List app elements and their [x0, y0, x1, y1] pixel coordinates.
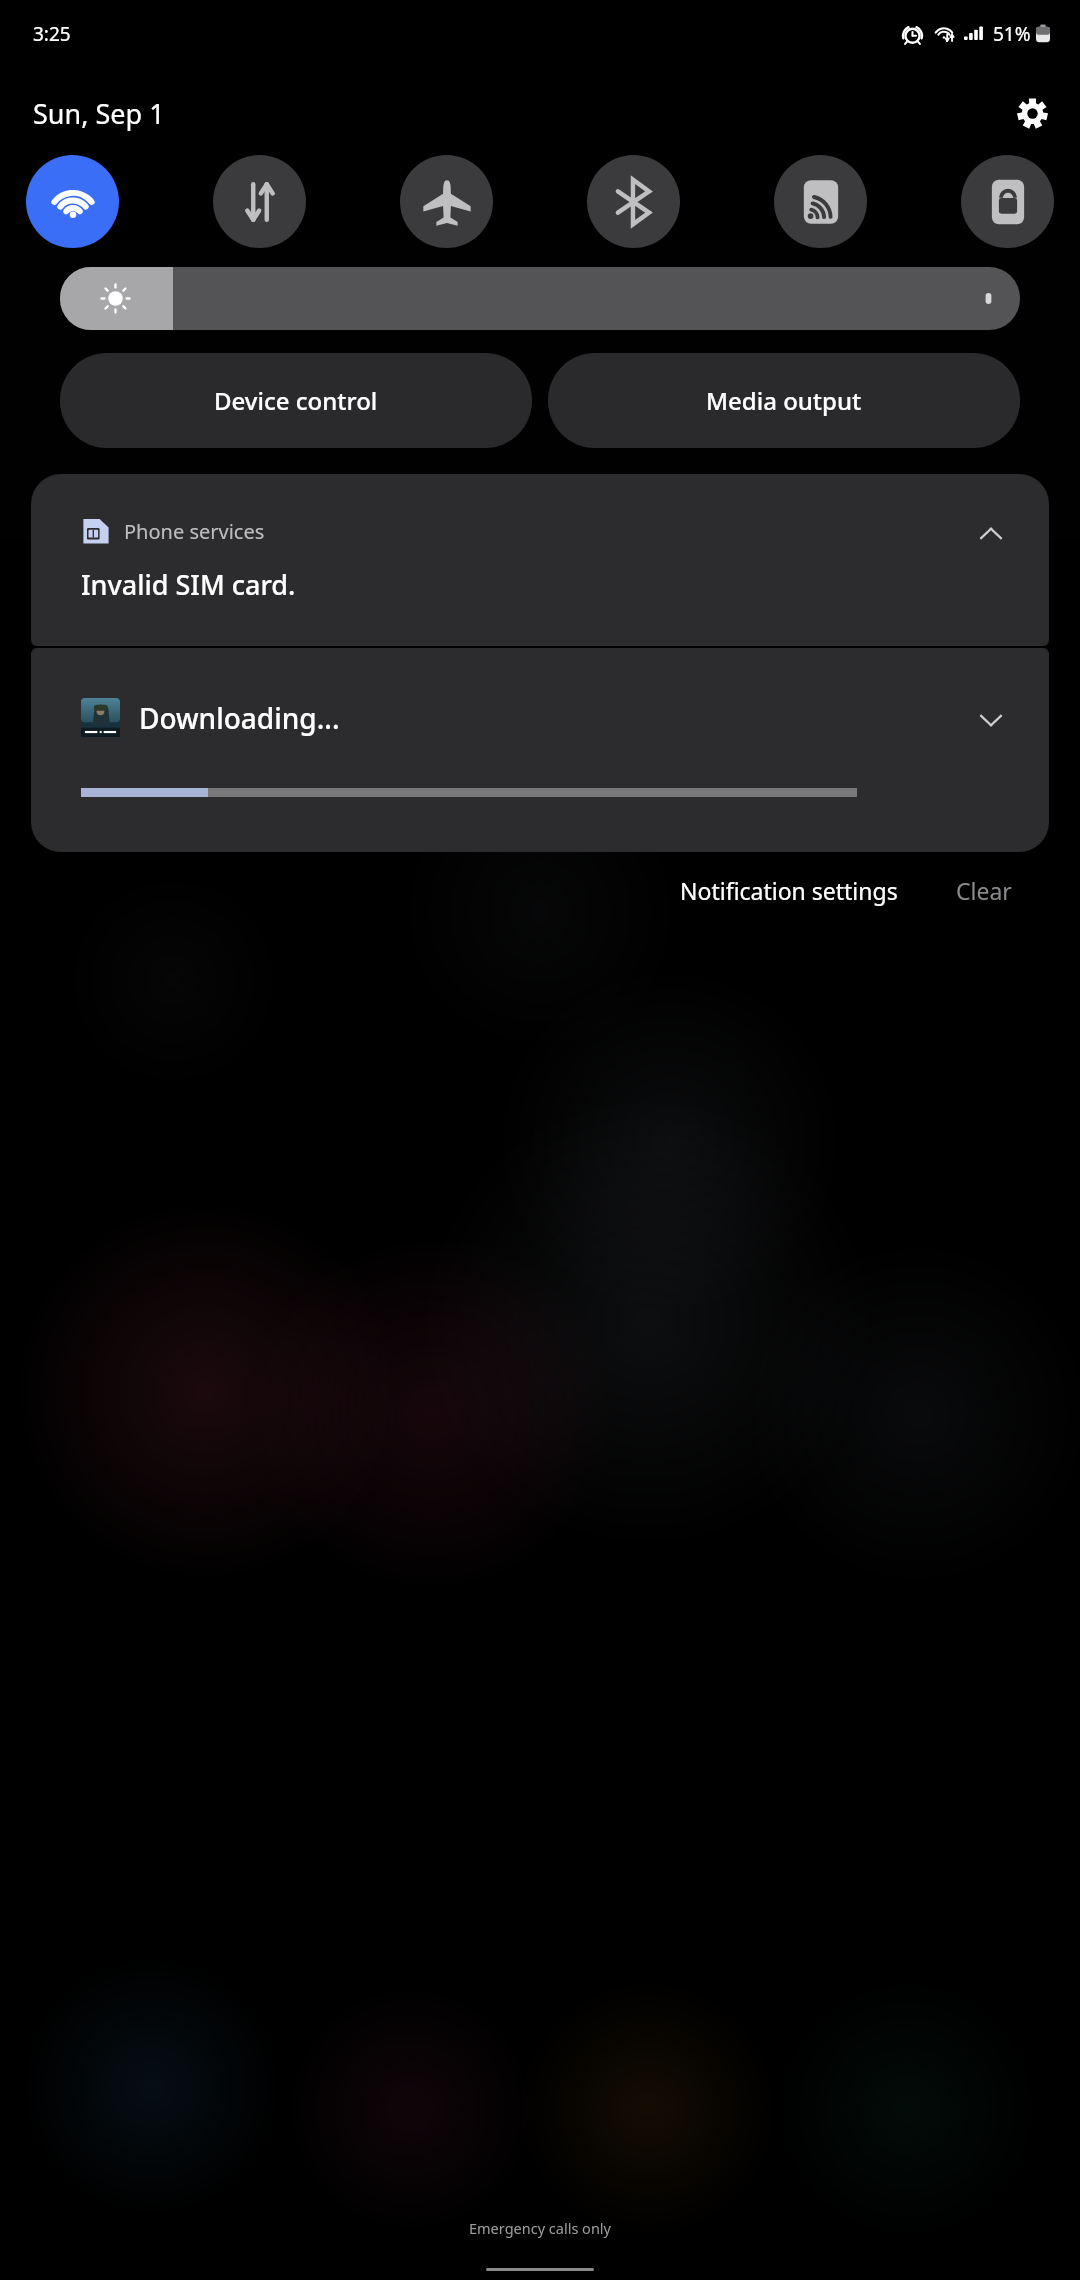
- button[interactable]: Wi-Fi: [26, 155, 119, 248]
- staticText: Sun, Sep 1: [33, 95, 165, 132]
- button[interactable]: Settings: [1004, 85, 1060, 141]
- staticText: 3:25: [33, 21, 71, 47]
- staticText: Media output: [706, 384, 862, 417]
- staticText: Invalid SIM card.: [81, 566, 296, 603]
- button[interactable]: Screen lock: [961, 155, 1054, 248]
- staticText: Clear: [956, 875, 1012, 906]
- button[interactable]: Notification settings: [672, 865, 906, 916]
- staticText: Device control: [214, 384, 378, 417]
- button[interactable]: Bluetooth: [587, 155, 680, 248]
- button[interactable]: Device control: [60, 353, 532, 448]
- staticText: Emergency calls only: [469, 2218, 611, 2238]
- button[interactable]: Brightness: [60, 267, 1020, 330]
- button[interactable]: Clear: [948, 865, 1020, 916]
- button[interactable]: NFC: [774, 155, 867, 248]
- button[interactable]: Downloading...: [31, 648, 1049, 852]
- button[interactable]: Mobile data: [213, 155, 306, 248]
- button[interactable]: Phone services: [31, 474, 1049, 646]
- button[interactable]: Airplane mode: [400, 155, 493, 248]
- button[interactable]: Expand: [963, 692, 1019, 748]
- staticText: Downloading...: [139, 699, 340, 737]
- staticText: 51%: [993, 21, 1031, 47]
- staticText: Phone services: [124, 518, 265, 545]
- button[interactable]: Collapse: [963, 506, 1019, 562]
- button[interactable]: Media output: [548, 353, 1020, 448]
- staticText: Notification settings: [680, 875, 898, 906]
